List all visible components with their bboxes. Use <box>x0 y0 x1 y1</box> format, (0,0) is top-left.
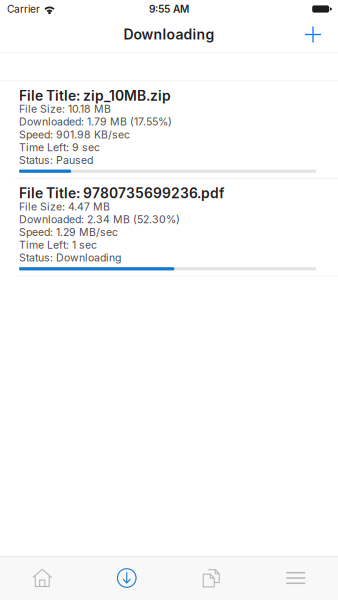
staticText: Time Left: 9 sec <box>19 141 100 154</box>
staticText: Downloading <box>123 26 214 43</box>
staticText: File Size: 10.18 MB <box>19 103 111 115</box>
staticText: File Title: zip_10MB.zip <box>19 87 171 104</box>
button[interactable]: More <box>253 556 338 600</box>
button[interactable]: Home <box>0 556 84 600</box>
button[interactable]: File Title: zip_10MB.zip <box>0 81 338 178</box>
staticText: Status: Downloading <box>19 251 121 264</box>
staticText: File Title: 9780735699236.pdf <box>19 185 224 202</box>
staticText: Time Left: 1 sec <box>19 239 97 251</box>
staticText: Downloaded: 2.34 MB (52.30%) <box>19 213 180 226</box>
staticText: Speed: 901.98 KB/sec <box>19 128 130 141</box>
button[interactable]: Add download <box>298 19 328 49</box>
staticText: Status: Paused <box>19 154 93 166</box>
button[interactable]: Files <box>169 556 253 600</box>
button[interactable]: File Title: 9780735699236.pdf <box>0 179 338 276</box>
button[interactable]: Downloading <box>84 556 169 600</box>
staticText: Downloaded: 1.79 MB (17.55%) <box>19 115 172 128</box>
staticText: Carrier <box>7 3 40 15</box>
staticText: Speed: 1.29 MB/sec <box>19 226 118 238</box>
staticText: File Size: 4.47 MB <box>19 200 110 213</box>
staticText: 9:55 AM <box>149 3 189 15</box>
